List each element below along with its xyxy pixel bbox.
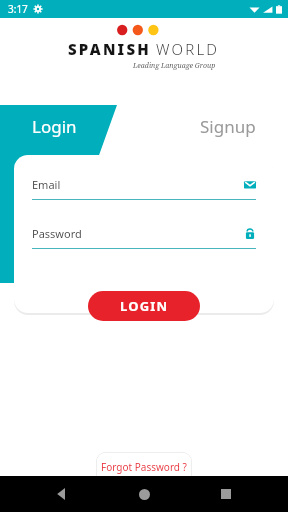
staticText: SPANISH xyxy=(68,39,151,59)
button[interactable]: Password xyxy=(32,226,256,249)
other: Password xyxy=(244,228,256,240)
button[interactable]: LOGIN xyxy=(88,291,200,321)
staticText: Password xyxy=(32,226,82,241)
staticText: Forgot Password ? xyxy=(101,460,187,474)
other: Email xyxy=(244,179,256,191)
staticText: Leading Language Group xyxy=(133,61,216,71)
button[interactable]: Forgot Password ? xyxy=(96,452,192,488)
button[interactable]: Recent apps xyxy=(206,476,246,512)
button[interactable]: Login xyxy=(28,113,81,140)
staticText: 3:17 xyxy=(8,2,28,16)
staticText: WORLD xyxy=(156,39,220,59)
button[interactable]: Signup xyxy=(196,113,260,140)
staticText: Signup xyxy=(200,115,256,138)
staticText: LOGIN xyxy=(120,297,169,315)
button[interactable]: Home xyxy=(124,476,164,512)
staticText: Login xyxy=(32,115,77,138)
staticText: Email xyxy=(32,177,61,192)
button[interactable]: Back xyxy=(42,476,82,512)
button[interactable]: Email xyxy=(32,177,256,200)
